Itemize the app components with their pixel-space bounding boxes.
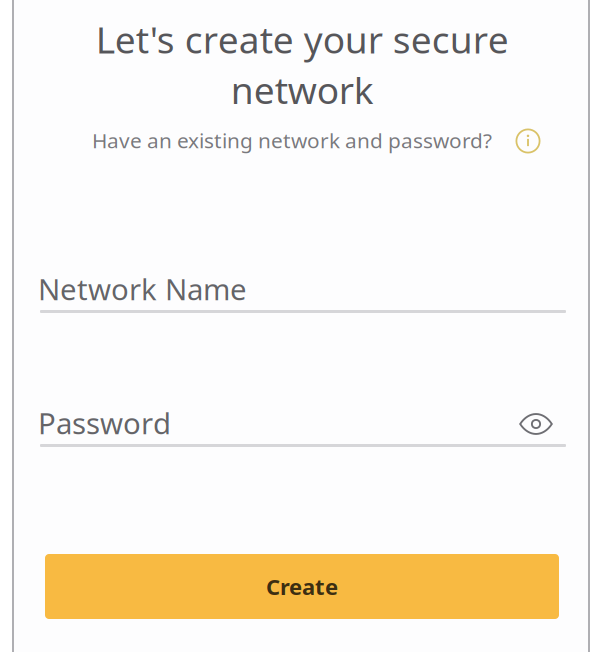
staticText: Create xyxy=(266,571,338,601)
button[interactable]: Show password xyxy=(513,405,559,443)
button[interactable]: Network Name xyxy=(40,263,566,313)
button[interactable]: Create xyxy=(45,554,559,619)
button[interactable]: About existing networks xyxy=(509,122,547,160)
staticText: Password xyxy=(38,403,171,443)
staticText: Have an existing network and password? xyxy=(92,126,492,154)
staticText: Let's create your secure network xyxy=(95,14,508,115)
button[interactable]: Password xyxy=(40,397,566,447)
staticText: Network Name xyxy=(38,269,247,309)
